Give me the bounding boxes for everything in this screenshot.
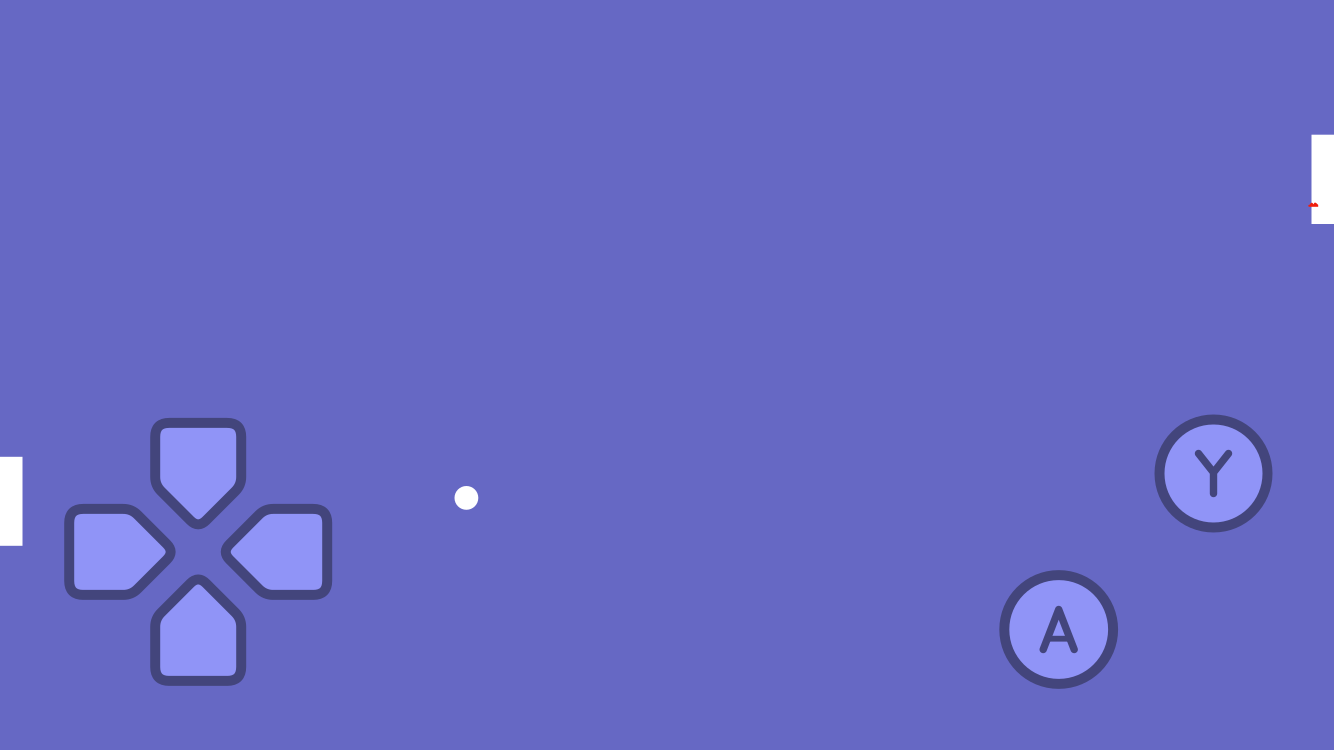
button[interactable]: Up — [150, 418, 246, 533]
button[interactable]: Down — [150, 570, 246, 686]
button[interactable]: Right — [217, 504, 332, 600]
button[interactable]: Left — [64, 504, 180, 600]
button[interactable]: A button — [999, 570, 1118, 689]
button[interactable]: Y button — [1154, 414, 1272, 532]
